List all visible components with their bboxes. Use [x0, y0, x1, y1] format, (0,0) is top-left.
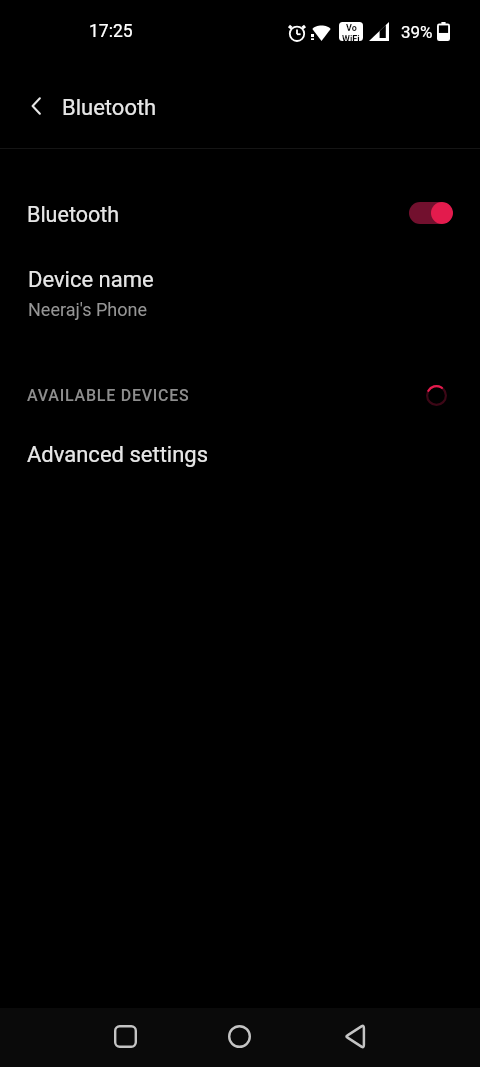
staticText: Device name: [28, 267, 154, 293]
button[interactable]: Bluetooth on: [409, 202, 453, 224]
staticText: 39%: [401, 22, 433, 42]
button[interactable]: Back: [327, 1007, 383, 1066]
other: Scanning for devices: [426, 385, 447, 406]
button[interactable]: Recent apps: [97, 1007, 153, 1066]
staticText: Bluetooth: [27, 202, 120, 227]
staticText: 17:25: [89, 21, 133, 42]
staticText: AVAILABLE DEVICES: [27, 386, 190, 405]
staticText: Bluetooth: [62, 95, 157, 121]
button[interactable]: Home: [211, 1007, 267, 1066]
button[interactable]: Advanced settings: [0, 426, 480, 484]
staticText: WiFi: [342, 34, 360, 41]
staticText: Advanced settings: [27, 442, 209, 468]
button[interactable]: Navigate up: [17, 86, 57, 126]
staticText: Vo: [346, 23, 357, 34]
button[interactable]: Bluetooth: [0, 181, 480, 247]
staticText: Neeraj's Phone: [28, 299, 147, 320]
button[interactable]: Device name: [0, 267, 480, 343]
